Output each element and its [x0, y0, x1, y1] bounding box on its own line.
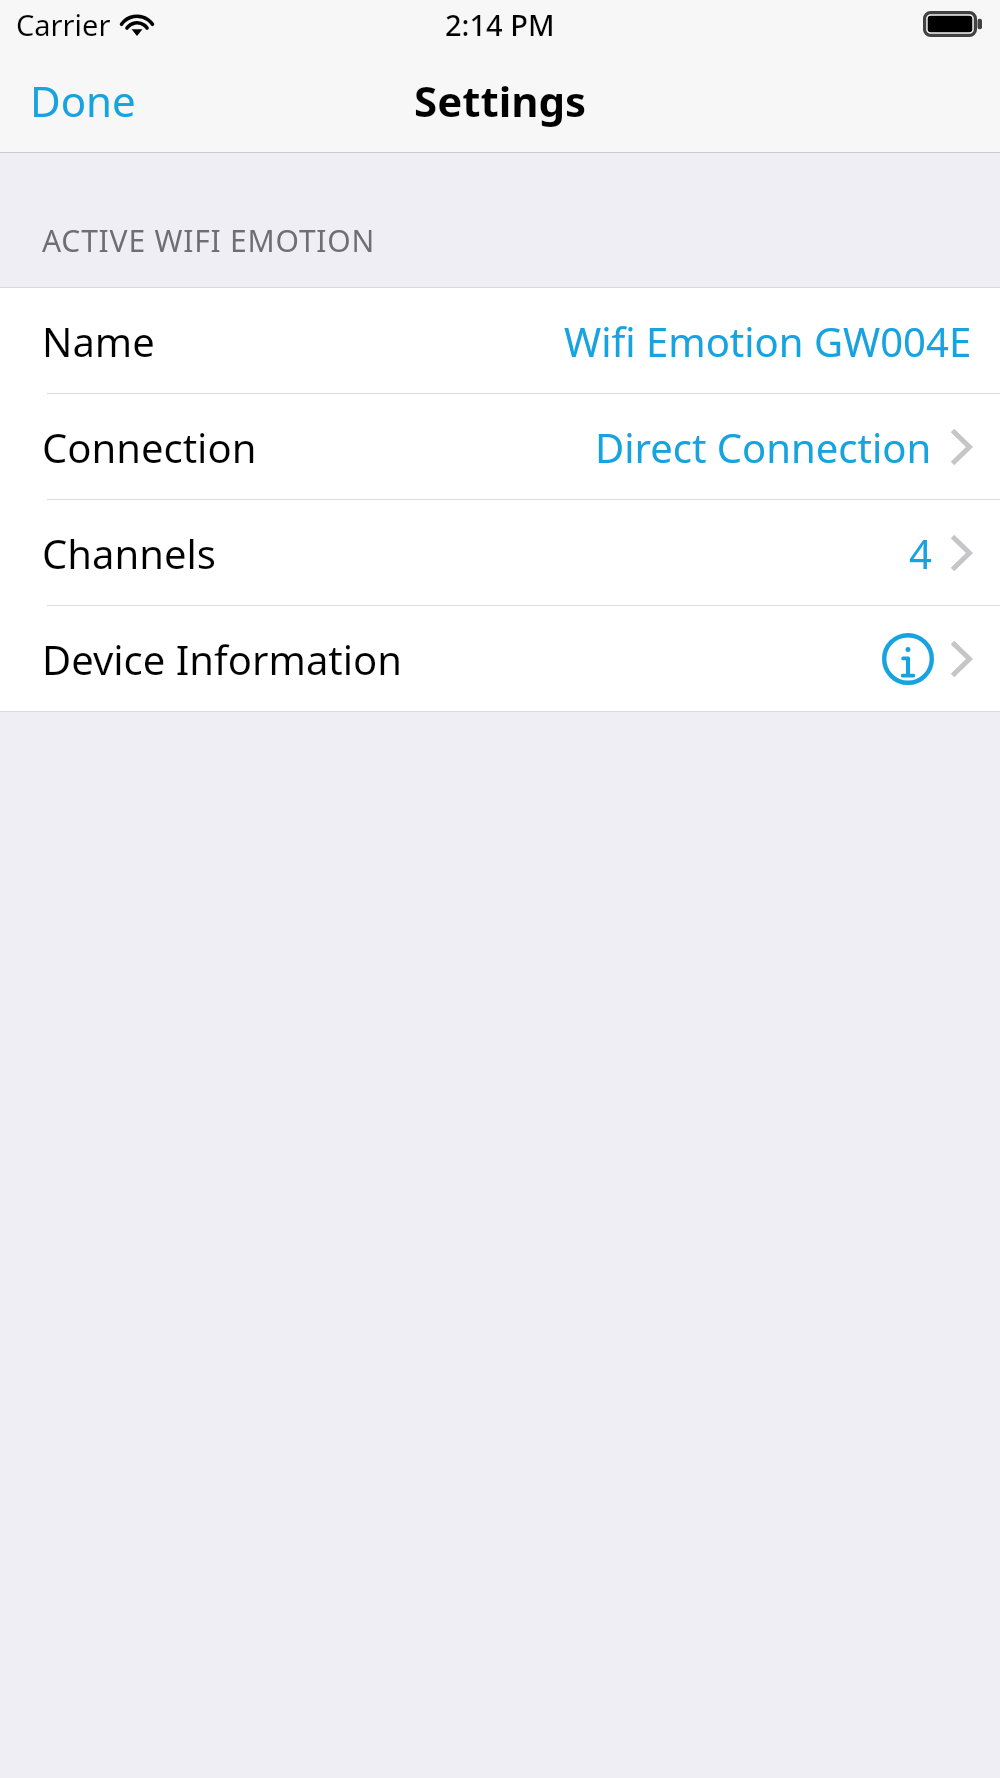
button[interactable]: Name	[0, 288, 1000, 393]
button[interactable]: Channels	[0, 500, 1000, 605]
staticText: 2:14 PM	[445, 5, 555, 44]
staticText: Settings	[414, 72, 587, 129]
staticText: Done	[30, 72, 136, 129]
staticText: Carrier	[16, 5, 111, 44]
staticText: Device Information	[42, 632, 403, 686]
staticText: Direct Connection	[595, 420, 932, 474]
staticText: ACTIVE WIFI EMOTION	[42, 220, 376, 261]
button[interactable]: Connection	[0, 394, 1000, 499]
staticText: Wifi Emotion GW004E	[564, 314, 972, 368]
button[interactable]: Done	[0, 56, 160, 145]
button[interactable]: Device Information	[0, 606, 1000, 711]
staticText: Connection	[42, 420, 257, 474]
staticText: Channels	[42, 526, 216, 580]
staticText: Name	[42, 314, 155, 368]
staticText: 4	[909, 526, 932, 580]
other: Device information	[882, 633, 934, 685]
